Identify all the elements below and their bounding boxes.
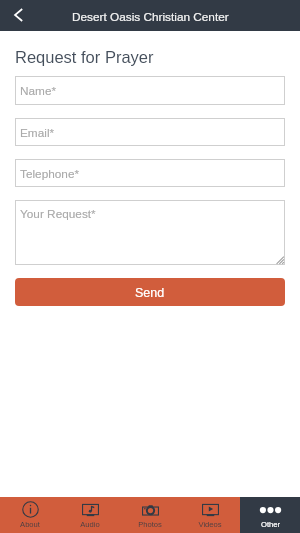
button[interactable]: Audio — [60, 497, 120, 533]
staticText: Name* — [20, 84, 57, 97]
staticText: Request for Prayer — [15, 48, 154, 66]
staticText: About — [20, 520, 40, 528]
staticText: Telephone* — [20, 167, 80, 180]
staticText: Email* — [20, 126, 55, 139]
staticText: Photos — [138, 520, 162, 528]
button[interactable]: Videos — [180, 497, 240, 533]
staticText: Desert Oasis Christian Center — [72, 10, 229, 23]
staticText: Audio — [80, 520, 100, 528]
staticText: Your Request* — [20, 207, 96, 220]
button[interactable]: Your Request* — [15, 200, 285, 265]
button[interactable]: Email* — [15, 118, 285, 146]
staticText: Send — [135, 286, 165, 300]
button[interactable]: Photos — [120, 497, 180, 533]
button[interactable]: Other — [240, 497, 300, 533]
staticText: Other — [261, 520, 280, 528]
button[interactable]: Back — [0, 0, 36, 31]
staticText: Videos — [198, 520, 222, 528]
button[interactable]: Telephone* — [15, 159, 285, 187]
button[interactable]: About — [0, 497, 60, 533]
button[interactable]: Name* — [15, 76, 285, 105]
button[interactable]: Send — [15, 278, 285, 306]
